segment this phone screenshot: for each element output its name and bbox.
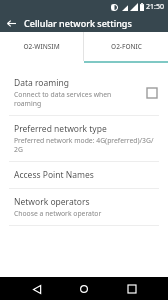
button[interactable]: Navigate up xyxy=(4,16,19,31)
button[interactable]: O2-WINSIM xyxy=(0,32,83,61)
button[interactable]: Recent apps xyxy=(121,278,143,300)
button[interactable]: Network operators xyxy=(0,189,168,225)
staticText: Connect to data services when roaming xyxy=(14,90,112,108)
staticText: Data roaming xyxy=(14,77,69,89)
button[interactable]: Home xyxy=(73,278,95,300)
staticText: Preferred network mode: 4G(preferred)/3G… xyxy=(14,136,156,154)
staticText: O2-FONIC xyxy=(111,42,142,51)
button[interactable]: Data roaming xyxy=(0,70,168,115)
staticText: Preferred network type xyxy=(14,123,107,135)
staticText: Access Point Names xyxy=(14,169,94,181)
button[interactable]: Preferred network type xyxy=(0,116,168,161)
staticText: Cellular network settings xyxy=(24,17,132,29)
button[interactable]: Data roaming toggle xyxy=(144,85,159,100)
button[interactable]: Access Point Names xyxy=(0,162,168,188)
staticText: O2-WINSIM xyxy=(23,42,60,51)
staticText: Choose a network operator xyxy=(14,209,102,218)
staticText: Network operators xyxy=(14,196,90,208)
staticText: 21:50 xyxy=(146,2,164,12)
button[interactable]: O2-FONIC xyxy=(84,32,168,61)
button[interactable]: Back xyxy=(26,278,48,300)
